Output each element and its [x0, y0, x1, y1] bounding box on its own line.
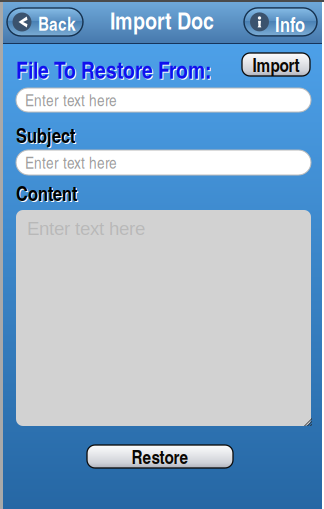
staticText: Import: [252, 51, 299, 78]
staticText: Import Doc: [110, 3, 214, 37]
staticText: Info: [275, 10, 305, 38]
staticText: Subject: [17, 122, 76, 150]
staticText: File To Restore From:: [17, 54, 212, 87]
staticText: Restore: [131, 443, 188, 470]
button[interactable]: Restore: [87, 445, 233, 468]
staticText: Enter text here: [25, 88, 117, 111]
staticText: Content: [17, 180, 78, 208]
staticText: File To Restore From:: [16, 53, 211, 86]
staticText: Subject: [16, 121, 75, 149]
button[interactable]: Back: [7, 8, 83, 36]
staticText: Content: [16, 179, 77, 207]
button[interactable]: Import: [242, 53, 310, 76]
staticText: Enter text here: [27, 218, 145, 239]
staticText: Back: [38, 10, 76, 36]
button[interactable]: Info: [244, 8, 317, 36]
staticText: Enter text here: [25, 151, 117, 173]
